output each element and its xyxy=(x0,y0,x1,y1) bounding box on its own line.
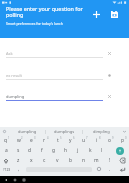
button[interactable]: 0 xyxy=(116,136,129,145)
button[interactable]: c xyxy=(38,156,51,165)
button[interactable]: Recents xyxy=(19,176,28,183)
staticText: m xyxy=(94,157,99,164)
staticText: a xyxy=(5,147,8,154)
button[interactable]: s xyxy=(12,146,24,155)
button[interactable]: Clear xyxy=(105,92,114,101)
button[interactable]: m xyxy=(90,156,103,165)
button[interactable]: More suggestions xyxy=(120,127,129,136)
staticText: u xyxy=(82,137,86,144)
button[interactable]: 3 xyxy=(25,136,38,145)
staticText: t xyxy=(57,137,59,144)
button[interactable]: j xyxy=(72,146,84,155)
button[interactable]: Options xyxy=(105,71,114,80)
button[interactable]: f xyxy=(36,146,48,155)
staticText: z xyxy=(17,157,20,164)
staticText: 6 xyxy=(73,136,75,140)
staticText: 1 xyxy=(8,136,10,140)
staticText: n xyxy=(82,157,86,164)
button[interactable]: dumplings xyxy=(46,127,83,136)
button[interactable]: k xyxy=(84,146,96,155)
button[interactable]: Emoji xyxy=(93,165,104,173)
staticText: ?123 xyxy=(3,167,11,172)
staticText: , xyxy=(18,166,20,172)
staticText: b xyxy=(69,157,73,164)
staticText: dumpling xyxy=(18,129,37,134)
staticText: j xyxy=(77,147,79,154)
staticText: s xyxy=(17,147,20,154)
staticText: . xyxy=(109,166,111,172)
button[interactable]: d xyxy=(24,146,36,155)
staticText: l xyxy=(101,147,103,154)
staticText: p xyxy=(121,137,125,144)
staticText: dumpling xyxy=(6,94,25,99)
button[interactable]: Home xyxy=(10,176,19,183)
staticText: 8 xyxy=(99,136,101,140)
staticText: w xyxy=(17,137,21,144)
staticText: 5 xyxy=(60,136,62,140)
staticText: q xyxy=(4,137,8,144)
button[interactable]: Clear xyxy=(105,49,114,58)
staticText: Please enter your question for polling xyxy=(6,5,86,19)
button[interactable]: Shift xyxy=(0,156,12,165)
button[interactable]: v xyxy=(51,156,64,165)
button[interactable]: Settings xyxy=(0,127,8,136)
button[interactable]: 6 xyxy=(64,136,77,145)
staticText: ! xyxy=(109,157,111,164)
button[interactable]: 1 xyxy=(0,136,12,145)
staticText: k xyxy=(89,147,92,154)
button[interactable]: l xyxy=(96,146,108,155)
staticText: 4 xyxy=(47,136,49,140)
button[interactable]: a xyxy=(0,146,12,155)
staticText: dimpling xyxy=(93,129,110,134)
staticText: Ask xyxy=(6,51,13,56)
button[interactable]: g xyxy=(48,146,60,155)
button[interactable]: Back xyxy=(1,176,10,183)
button[interactable]: dumpling xyxy=(8,127,46,136)
staticText: 0 xyxy=(125,136,127,140)
button[interactable]: Add xyxy=(90,8,102,20)
button[interactable]: ?123 xyxy=(0,165,13,173)
button[interactable]: Save xyxy=(108,8,120,20)
button[interactable]: 4 xyxy=(38,136,51,145)
staticText: 9 xyxy=(112,136,114,140)
button[interactable]: Enter xyxy=(116,165,129,173)
staticText: g xyxy=(52,147,56,154)
button[interactable]: b xyxy=(64,156,77,165)
staticText: i xyxy=(96,137,98,144)
staticText: e xyxy=(30,137,33,144)
staticText: Smart preferences for today's lunch xyxy=(6,21,63,26)
button[interactable]: n xyxy=(77,156,90,165)
staticText: r xyxy=(43,137,46,144)
staticText: c xyxy=(43,157,46,164)
button[interactable]: 7 xyxy=(77,136,90,145)
button[interactable]: 8 xyxy=(90,136,103,145)
staticText: dumplings xyxy=(54,129,75,134)
button[interactable]: h xyxy=(60,146,72,155)
button[interactable]: dimpling xyxy=(83,127,120,136)
button[interactable]: ex result xyxy=(0,70,129,80)
button[interactable]: 5 xyxy=(51,136,64,145)
button[interactable]: 2 xyxy=(12,136,25,145)
staticText: f xyxy=(41,147,43,154)
staticText: o xyxy=(108,137,111,144)
staticText: h xyxy=(64,147,68,154)
staticText: ex result xyxy=(6,73,23,78)
button[interactable]: z xyxy=(12,156,25,165)
staticText: x xyxy=(30,157,33,164)
staticText: 2 xyxy=(21,136,23,140)
button[interactable]: , xyxy=(13,165,24,173)
button[interactable]: x xyxy=(25,156,38,165)
button[interactable]: Ask xyxy=(0,48,129,58)
staticText: 3 xyxy=(34,136,36,140)
button[interactable]: ! xyxy=(103,156,116,165)
staticText: 7 xyxy=(86,136,88,140)
button[interactable]: dumpling xyxy=(0,91,129,101)
button[interactable]: 9 xyxy=(103,136,116,145)
staticText: v xyxy=(56,157,59,164)
button[interactable]: Backspace xyxy=(116,156,129,165)
staticText: y xyxy=(69,137,72,144)
button[interactable]: . xyxy=(104,165,115,173)
button[interactable]: Voice input xyxy=(116,147,124,155)
staticText: d xyxy=(28,147,32,154)
